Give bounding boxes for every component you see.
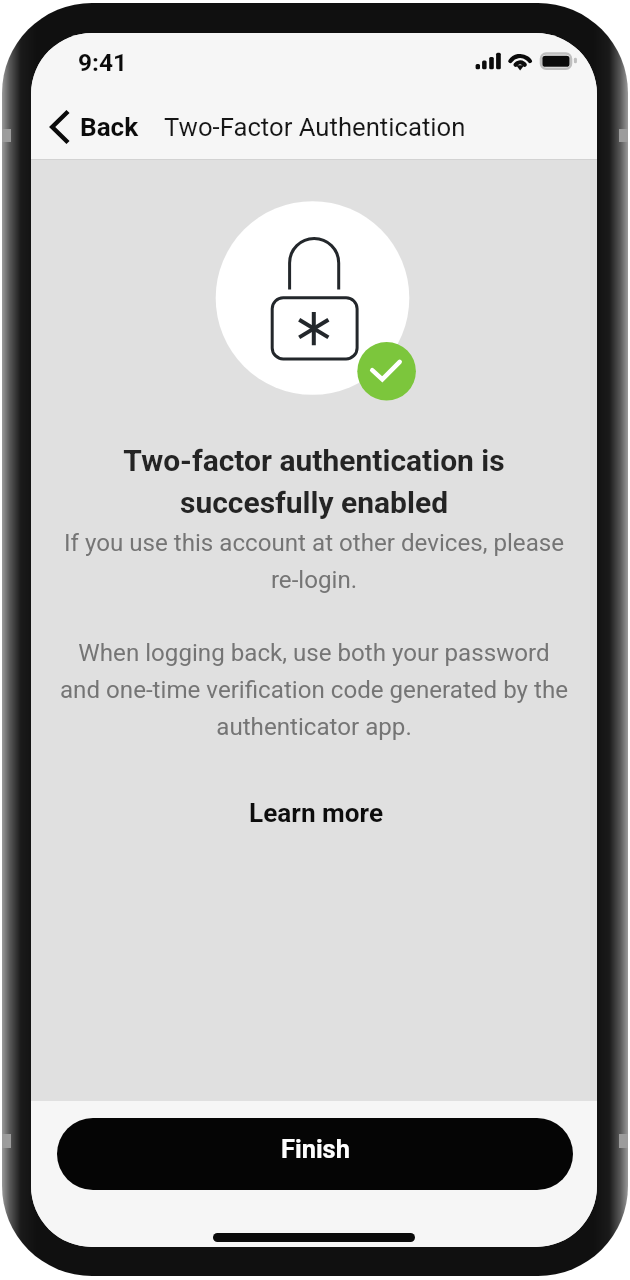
button[interactable]: Finish — [57, 1118, 573, 1190]
staticText: 9:41 — [78, 48, 128, 77]
staticText: Two-Factor Authentication — [164, 112, 466, 142]
staticText: Learn more — [249, 798, 384, 829]
button[interactable]: Learn more — [235, 790, 398, 837]
staticText: When logging back, use both your passwor… — [56, 639, 572, 741]
button[interactable]: Back — [31, 106, 145, 148]
other: Back — [50, 110, 69, 144]
staticText: Back — [80, 112, 139, 143]
staticText: If you use this account at other devices… — [56, 529, 572, 594]
staticText: Finish — [281, 1134, 350, 1164]
staticText: Two-factor authentication is succesfully… — [84, 443, 544, 521]
